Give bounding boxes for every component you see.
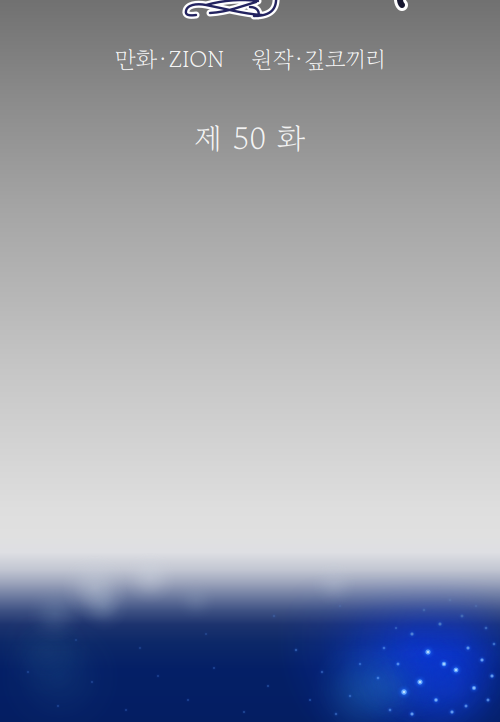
staticText: 제 50 화 bbox=[194, 116, 305, 160]
staticText: 만화·ZION bbox=[114, 42, 223, 76]
staticText: 원작·깊코끼리 bbox=[251, 42, 385, 76]
